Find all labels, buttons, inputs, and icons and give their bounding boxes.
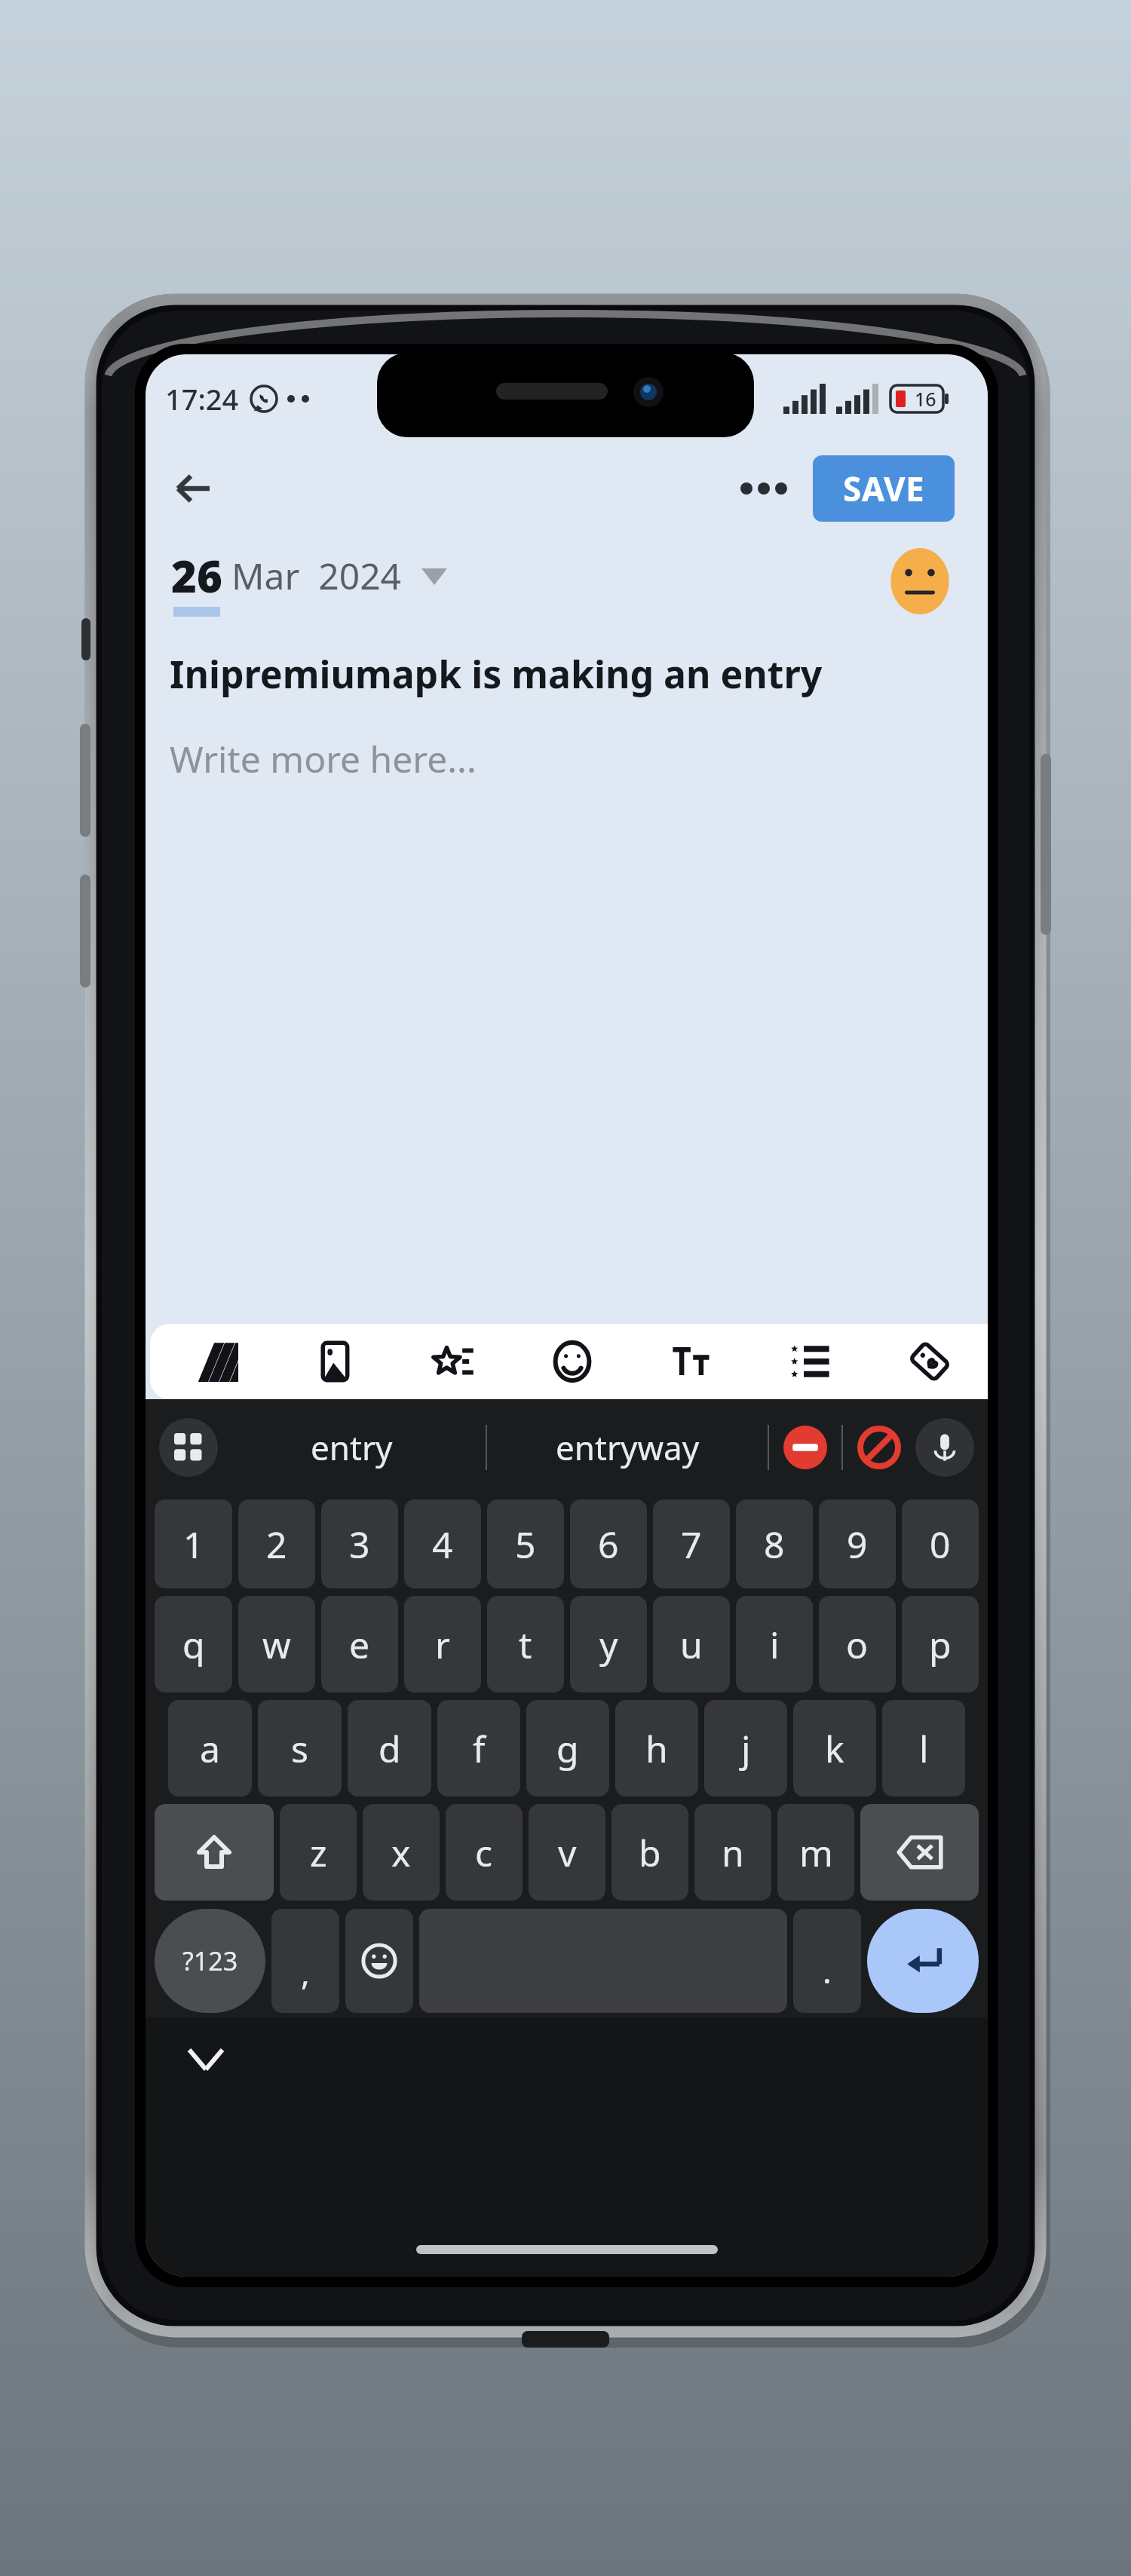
staticText: 0 bbox=[930, 1520, 951, 1569]
button[interactable]: d bbox=[348, 1700, 431, 1796]
staticText: Inipremiumapk is making an entry bbox=[170, 648, 823, 700]
button[interactable]: a bbox=[168, 1700, 252, 1796]
button[interactable]: g bbox=[526, 1700, 609, 1796]
staticText: g bbox=[556, 1724, 579, 1773]
button[interactable]: entryway bbox=[487, 1399, 768, 1496]
button[interactable]: m bbox=[777, 1804, 854, 1901]
button[interactable]: 8 bbox=[736, 1499, 813, 1588]
staticText: s bbox=[291, 1724, 308, 1773]
button[interactable]: , bbox=[271, 1909, 339, 2013]
button[interactable]: 7 bbox=[653, 1499, 730, 1588]
button[interactable]: Checklist bbox=[751, 1324, 870, 1399]
staticText: b bbox=[639, 1828, 661, 1877]
staticText: j bbox=[741, 1724, 751, 1773]
button[interactable]: f bbox=[437, 1700, 520, 1796]
staticText: 4 bbox=[432, 1520, 453, 1569]
button[interactable]: p bbox=[902, 1596, 979, 1692]
button[interactable]: z bbox=[280, 1804, 357, 1901]
button[interactable]: x bbox=[363, 1804, 440, 1901]
button[interactable]: More options bbox=[731, 456, 796, 521]
button[interactable]: Prohibited emoji bbox=[843, 1399, 915, 1496]
staticText: , bbox=[301, 1950, 310, 1995]
staticText: entry bbox=[311, 1425, 393, 1470]
button[interactable]: Shift bbox=[155, 1804, 274, 1901]
button[interactable]: 26 bbox=[168, 541, 450, 621]
staticText: 5 bbox=[515, 1520, 536, 1569]
button[interactable]: Favourites bbox=[394, 1324, 513, 1399]
button[interactable]: Hide keyboard bbox=[176, 2029, 236, 2090]
staticText: n bbox=[722, 1828, 744, 1877]
button[interactable]: Enter bbox=[867, 1909, 979, 2013]
staticText: SAVE bbox=[843, 466, 925, 511]
staticText: l bbox=[919, 1724, 929, 1773]
button[interactable]: 2 bbox=[238, 1499, 315, 1588]
staticText: v bbox=[558, 1828, 577, 1877]
button[interactable]: Tags bbox=[870, 1324, 988, 1399]
staticText: e bbox=[349, 1620, 370, 1669]
staticText: q bbox=[182, 1620, 205, 1669]
staticText: 16 bbox=[915, 386, 936, 412]
button[interactable]: n bbox=[694, 1804, 771, 1901]
button[interactable]: 5 bbox=[487, 1499, 564, 1588]
staticText: t bbox=[519, 1620, 532, 1669]
button[interactable]: o bbox=[819, 1596, 896, 1692]
button[interactable]: e bbox=[321, 1596, 398, 1692]
button[interactable]: q bbox=[155, 1596, 232, 1692]
staticText: entryway bbox=[556, 1425, 700, 1470]
staticText: . bbox=[823, 1948, 832, 1993]
button[interactable]: Mood bbox=[885, 547, 955, 616]
staticText: 6 bbox=[598, 1520, 619, 1569]
button[interactable]: 4 bbox=[404, 1499, 481, 1588]
button[interactable]: 9 bbox=[819, 1499, 896, 1588]
button[interactable]: l bbox=[882, 1700, 965, 1796]
button[interactable]: Text format bbox=[632, 1324, 751, 1399]
button[interactable]: 0 bbox=[902, 1499, 979, 1588]
button[interactable]: h bbox=[615, 1700, 698, 1796]
button[interactable]: Background pattern bbox=[158, 1324, 276, 1399]
button[interactable]: Emoji bbox=[513, 1324, 632, 1399]
staticText: w bbox=[262, 1620, 291, 1669]
staticText: o bbox=[846, 1620, 869, 1669]
staticText: 2 bbox=[266, 1520, 287, 1569]
button[interactable]: entry bbox=[218, 1399, 486, 1496]
button[interactable]: b bbox=[611, 1804, 688, 1901]
button[interactable]: SAVE bbox=[813, 455, 955, 522]
button[interactable]: Emoji keyboard bbox=[345, 1909, 413, 2013]
button[interactable]: w bbox=[238, 1596, 315, 1692]
button[interactable]: 3 bbox=[321, 1499, 398, 1588]
staticText: 8 bbox=[764, 1520, 785, 1569]
staticText: 7 bbox=[681, 1520, 702, 1569]
staticText: h bbox=[645, 1724, 668, 1773]
button[interactable]: Backspace bbox=[860, 1804, 979, 1901]
staticText: Write more here... bbox=[170, 734, 477, 783]
button[interactable]: c bbox=[446, 1804, 523, 1901]
staticText: 1 bbox=[183, 1520, 204, 1569]
button[interactable]: 6 bbox=[570, 1499, 647, 1588]
staticText: 9 bbox=[847, 1520, 868, 1569]
button[interactable]: k bbox=[793, 1700, 876, 1796]
staticText: d bbox=[379, 1724, 401, 1773]
button[interactable]: No entry emoji bbox=[769, 1399, 841, 1496]
button[interactable]: Toolbar bbox=[159, 1418, 218, 1477]
staticText: m bbox=[799, 1828, 833, 1877]
button[interactable]: Voice input bbox=[915, 1418, 974, 1477]
button[interactable]: Back bbox=[161, 456, 225, 521]
button[interactable]: . bbox=[793, 1909, 861, 2013]
button[interactable]: v bbox=[529, 1804, 605, 1901]
button[interactable]: y bbox=[570, 1596, 647, 1692]
button[interactable]: s bbox=[258, 1700, 342, 1796]
button[interactable]: ?123 bbox=[155, 1909, 265, 2013]
button[interactable]: i bbox=[736, 1596, 813, 1692]
staticText: 26 bbox=[171, 546, 222, 605]
button[interactable]: Add photo bbox=[276, 1324, 394, 1399]
button[interactable]: r bbox=[404, 1596, 481, 1692]
button[interactable]: u bbox=[653, 1596, 730, 1692]
staticText: k bbox=[825, 1724, 844, 1773]
button[interactable]: 1 bbox=[155, 1499, 232, 1588]
button[interactable]: t bbox=[487, 1596, 564, 1692]
button[interactable]: j bbox=[704, 1700, 787, 1796]
staticText: i bbox=[770, 1620, 780, 1669]
button[interactable]: Write more here... bbox=[170, 734, 964, 783]
button[interactable]: Inipremiumapk is making an entry bbox=[170, 648, 964, 700]
